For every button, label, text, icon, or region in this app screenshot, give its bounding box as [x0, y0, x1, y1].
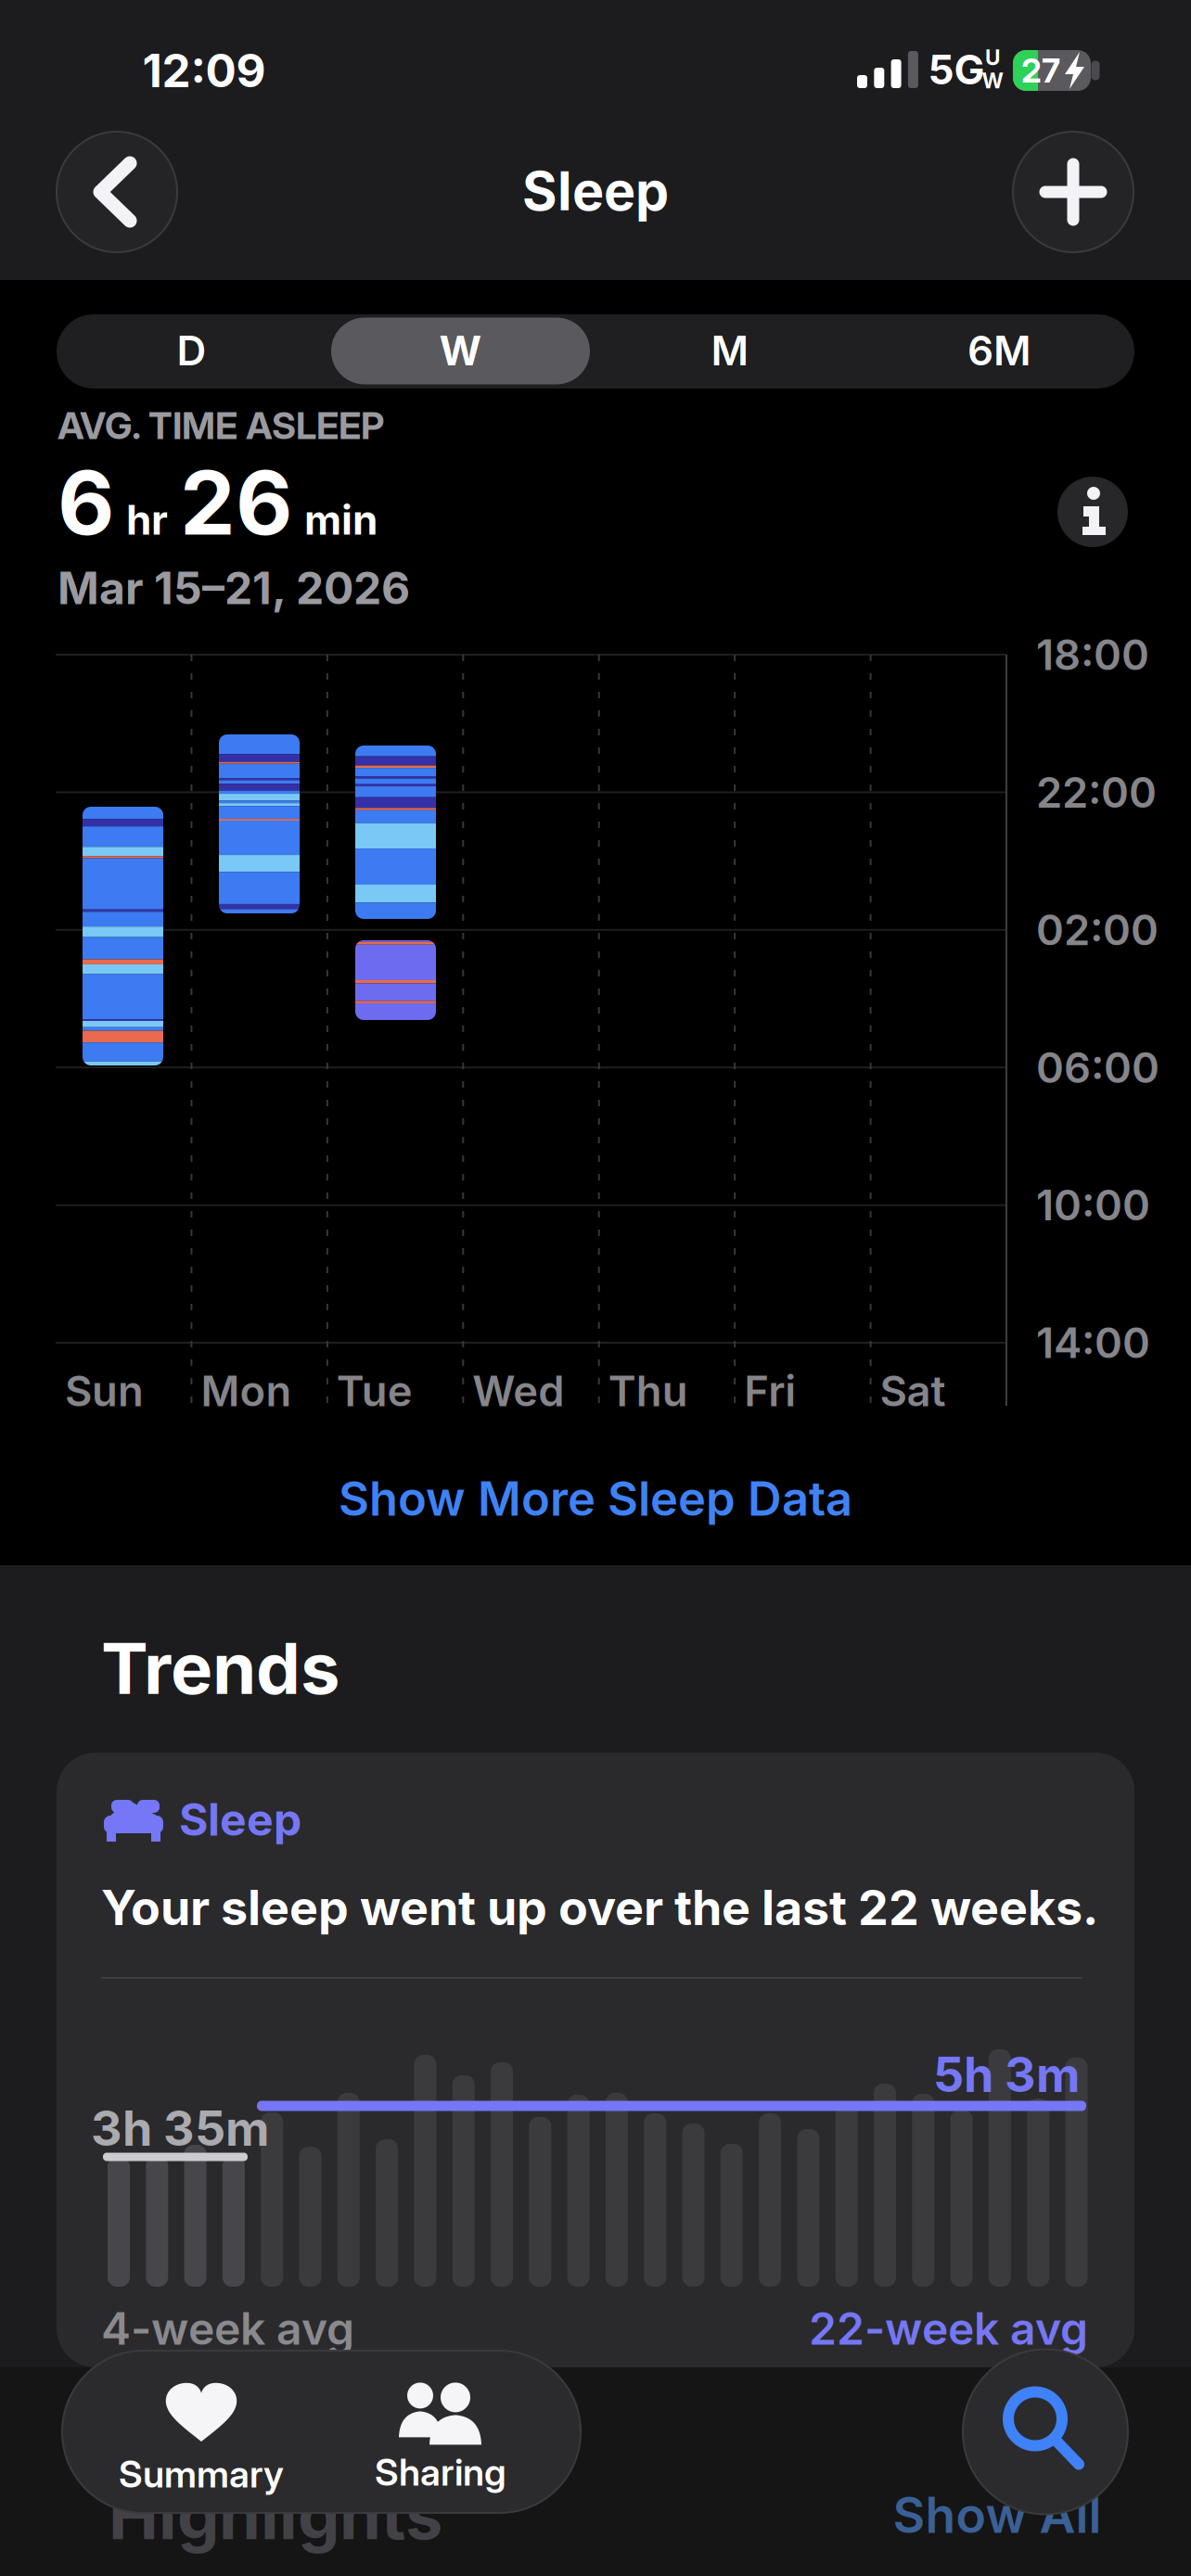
staticText: Mon [201, 1366, 292, 1416]
staticText: 12:09 [142, 43, 266, 97]
staticText: W [439, 326, 482, 375]
staticText: W [982, 68, 1003, 93]
button[interactable]: Search [962, 2348, 1129, 2515]
staticText: 27 [1021, 51, 1060, 90]
staticText: 4-week avg [101, 2302, 354, 2355]
staticText: Wed [472, 1366, 564, 1416]
staticText: Sleep [179, 1793, 301, 1846]
button[interactable]: Add Data [1012, 131, 1134, 253]
staticText: 5G [928, 45, 985, 94]
staticText: Thu [608, 1366, 688, 1416]
staticText: 06:00 [1036, 1043, 1159, 1092]
button[interactable]: Summary [119, 2382, 284, 2496]
staticText: Highlights [109, 2475, 442, 2554]
staticText: D [177, 326, 206, 375]
staticText: hr [126, 496, 168, 544]
staticText: 02:00 [1036, 905, 1159, 955]
button[interactable]: D [57, 313, 326, 388]
staticText: Show All [893, 2486, 1101, 2544]
staticText: min [304, 496, 378, 544]
staticText: 26 [180, 451, 292, 554]
staticText: Your sleep went up over the last 22 week… [101, 1879, 1098, 1936]
button[interactable]: W [326, 313, 595, 388]
staticText: 14:00 [1036, 1318, 1150, 1368]
staticText: Tue [337, 1366, 413, 1416]
staticText: 5h 3m [933, 2046, 1080, 2103]
button[interactable]: About Sleep [1057, 477, 1128, 547]
button[interactable]: Show All [893, 2486, 1101, 2544]
staticText: Mar 15–21, 2026 [58, 562, 410, 614]
button[interactable]: 6M [865, 313, 1134, 388]
staticText: 22-week avg [809, 2302, 1088, 2355]
staticText: AVG. TIME ASLEEP [58, 404, 384, 448]
staticText: Sun [65, 1366, 144, 1416]
staticText: Sat [880, 1366, 946, 1416]
staticText: Summary [119, 2452, 284, 2496]
staticText: 22:00 [1036, 768, 1157, 817]
staticText: M [711, 326, 749, 375]
staticText: U [985, 45, 1000, 70]
staticText: Trends [101, 1627, 340, 1710]
staticText: Fri [744, 1366, 796, 1416]
button[interactable]: Show More Sleep Data [339, 1471, 852, 1526]
staticText: 3h 35m [91, 2100, 269, 2156]
staticText: Show More Sleep Data [339, 1471, 852, 1526]
staticText: 18:00 [1036, 630, 1149, 680]
button[interactable]: Back [56, 131, 178, 253]
staticText: 10:00 [1036, 1180, 1150, 1230]
button[interactable]: Sharing [375, 2383, 506, 2494]
staticText: 6M [967, 326, 1031, 375]
staticText: 6 [58, 451, 114, 554]
staticText: Sleep [522, 160, 669, 222]
staticText: Sharing [375, 2450, 506, 2494]
button[interactable]: M [595, 313, 864, 388]
button[interactable]: Sleep trend [57, 1753, 1134, 2367]
